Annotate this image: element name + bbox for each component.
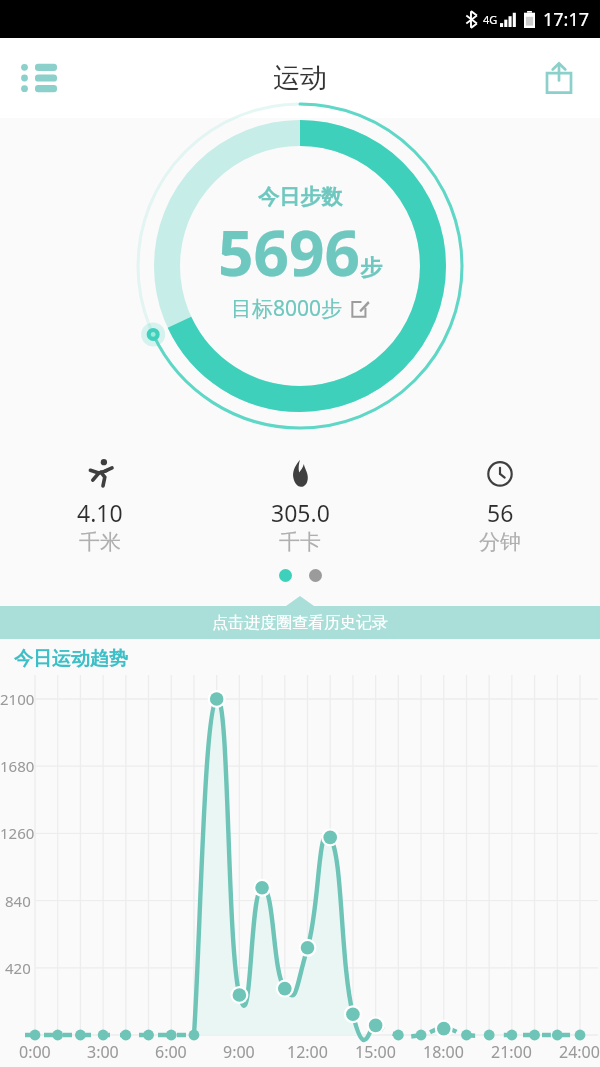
button[interactable]: Menu bbox=[14, 51, 68, 105]
staticText: 9:00 bbox=[223, 1041, 255, 1063]
button[interactable]: Share bbox=[532, 51, 586, 105]
staticText: 千卡 bbox=[279, 529, 321, 555]
staticText: 56 bbox=[487, 497, 514, 528]
staticText: 5696 bbox=[218, 210, 360, 294]
button[interactable]: 4.10 bbox=[0, 458, 200, 555]
staticText: 4G bbox=[483, 12, 498, 27]
staticText: 今日运动趋势 bbox=[14, 647, 128, 671]
staticText: 12:00 bbox=[287, 1041, 328, 1063]
staticText: 运动 bbox=[273, 61, 327, 95]
staticText: 目标8000步 bbox=[231, 294, 343, 323]
staticText: 步 bbox=[360, 254, 382, 282]
staticText: 1680 bbox=[0, 756, 35, 776]
button[interactable]: 305.0 bbox=[200, 458, 400, 555]
staticText: 分钟 bbox=[479, 529, 521, 555]
other: Edit goal bbox=[351, 299, 370, 318]
button[interactable] bbox=[279, 569, 292, 582]
staticText: 6:00 bbox=[155, 1041, 187, 1063]
button[interactable]: 点击进度圈查看历史记录 bbox=[0, 606, 600, 639]
staticText: 2100 bbox=[0, 689, 35, 709]
staticText: 305.0 bbox=[271, 497, 330, 528]
staticText: 17:17 bbox=[543, 7, 590, 32]
staticText: 点击进度圈查看历史记录 bbox=[212, 613, 388, 633]
staticText: 420 bbox=[5, 958, 31, 978]
staticText: 0:00 bbox=[19, 1041, 51, 1063]
staticText: 千米 bbox=[79, 529, 121, 555]
staticText: 21:00 bbox=[491, 1041, 532, 1063]
staticText: 18:00 bbox=[423, 1041, 464, 1063]
staticText: 今日步数 bbox=[258, 184, 342, 210]
staticText: 4.10 bbox=[77, 497, 123, 528]
button[interactable]: Today steps progress ring bbox=[0, 118, 600, 458]
button[interactable]: 56 bbox=[400, 458, 600, 555]
staticText: 840 bbox=[5, 891, 31, 911]
staticText: 24:00 bbox=[559, 1041, 600, 1063]
button[interactable] bbox=[309, 569, 322, 582]
staticText: 3:00 bbox=[87, 1041, 119, 1063]
staticText: 15:00 bbox=[355, 1041, 396, 1063]
staticText: 1260 bbox=[0, 823, 35, 843]
button[interactable]: 目标8000步 bbox=[231, 294, 370, 323]
